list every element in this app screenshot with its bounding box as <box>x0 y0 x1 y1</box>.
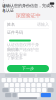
staticText: 姓名 <box>7 22 15 27</box>
staticText: 9:41 <box>3 0 5 14</box>
staticText: 请输入 <box>37 22 49 27</box>
staticText: 了解更多 <box>7 55 23 60</box>
staticText: 请确认您的身份信息，完成实名认证 <box>2 3 54 13</box>
button[interactable]: 下一步 <box>7 65 49 72</box>
staticText: 证件号码 <box>7 30 23 35</box>
staticText: 深度验证中 <box>15 12 40 19</box>
staticText: 下一步 <box>22 66 34 71</box>
staticText: 我们将严格保护您的隐私安全 <box>7 47 39 57</box>
staticText: 认证信息仅用于身份核验 <box>7 42 39 52</box>
